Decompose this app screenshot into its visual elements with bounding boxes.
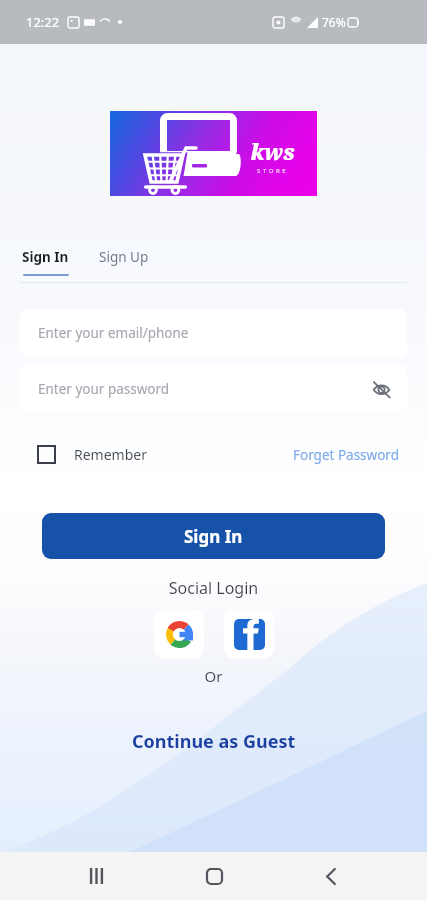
- button[interactable]: Sign In: [42, 513, 385, 559]
- staticText: STORE: [257, 167, 289, 175]
- staticText: 76%: [322, 14, 346, 30]
- staticText: Social Login: [0, 577, 427, 599]
- button[interactable]: Continue as Guest: [0, 729, 427, 754]
- staticText: Remember: [74, 445, 147, 464]
- button[interactable]: Show password: [364, 372, 398, 406]
- staticText: Enter your email/phone: [38, 324, 189, 342]
- button[interactable]: Back: [309, 854, 353, 898]
- button[interactable]: Sign in with Google: [154, 609, 204, 659]
- button[interactable]: Sign In: [20, 248, 71, 266]
- staticText: Enter your password: [38, 380, 170, 398]
- button[interactable]: Remember: [37, 445, 147, 464]
- button[interactable]: Home: [192, 854, 236, 898]
- staticText: Sign Up: [99, 248, 149, 266]
- staticText: Continue as Guest: [132, 729, 296, 754]
- staticText: Sign In: [22, 248, 69, 266]
- button[interactable]: Sign in with Facebook: [224, 609, 274, 659]
- button[interactable]: Forget Password: [293, 446, 399, 464]
- button[interactable]: Sign Up: [97, 248, 151, 266]
- button[interactable]: Enter your email/phone: [20, 309, 407, 357]
- staticText: kws: [251, 138, 295, 167]
- staticText: Forget Password: [293, 446, 399, 464]
- button[interactable]: Enter your password: [20, 365, 407, 413]
- button[interactable]: Recents: [74, 854, 118, 898]
- staticText: 12:22: [26, 13, 60, 31]
- staticText: Sign In: [184, 525, 243, 548]
- staticText: Or: [0, 666, 427, 686]
